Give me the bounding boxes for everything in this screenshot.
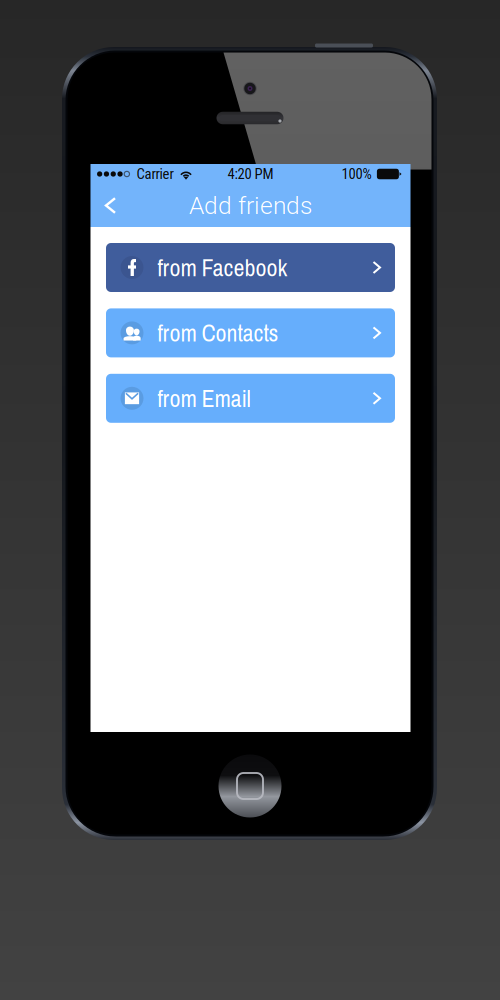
button[interactable]: from Contacts <box>106 308 395 357</box>
staticText: from Email <box>157 382 250 414</box>
staticText: from Facebook <box>157 251 287 284</box>
staticText: Add friends <box>189 191 312 220</box>
button[interactable]: Back <box>90 184 127 227</box>
staticText: Carrier <box>136 165 173 183</box>
button[interactable]: from Facebook <box>106 243 395 292</box>
button[interactable]: from Email <box>106 374 395 423</box>
staticText: 100% <box>341 165 371 183</box>
staticText: 4:20 PM <box>227 165 273 183</box>
staticText: from Contacts <box>157 317 278 349</box>
